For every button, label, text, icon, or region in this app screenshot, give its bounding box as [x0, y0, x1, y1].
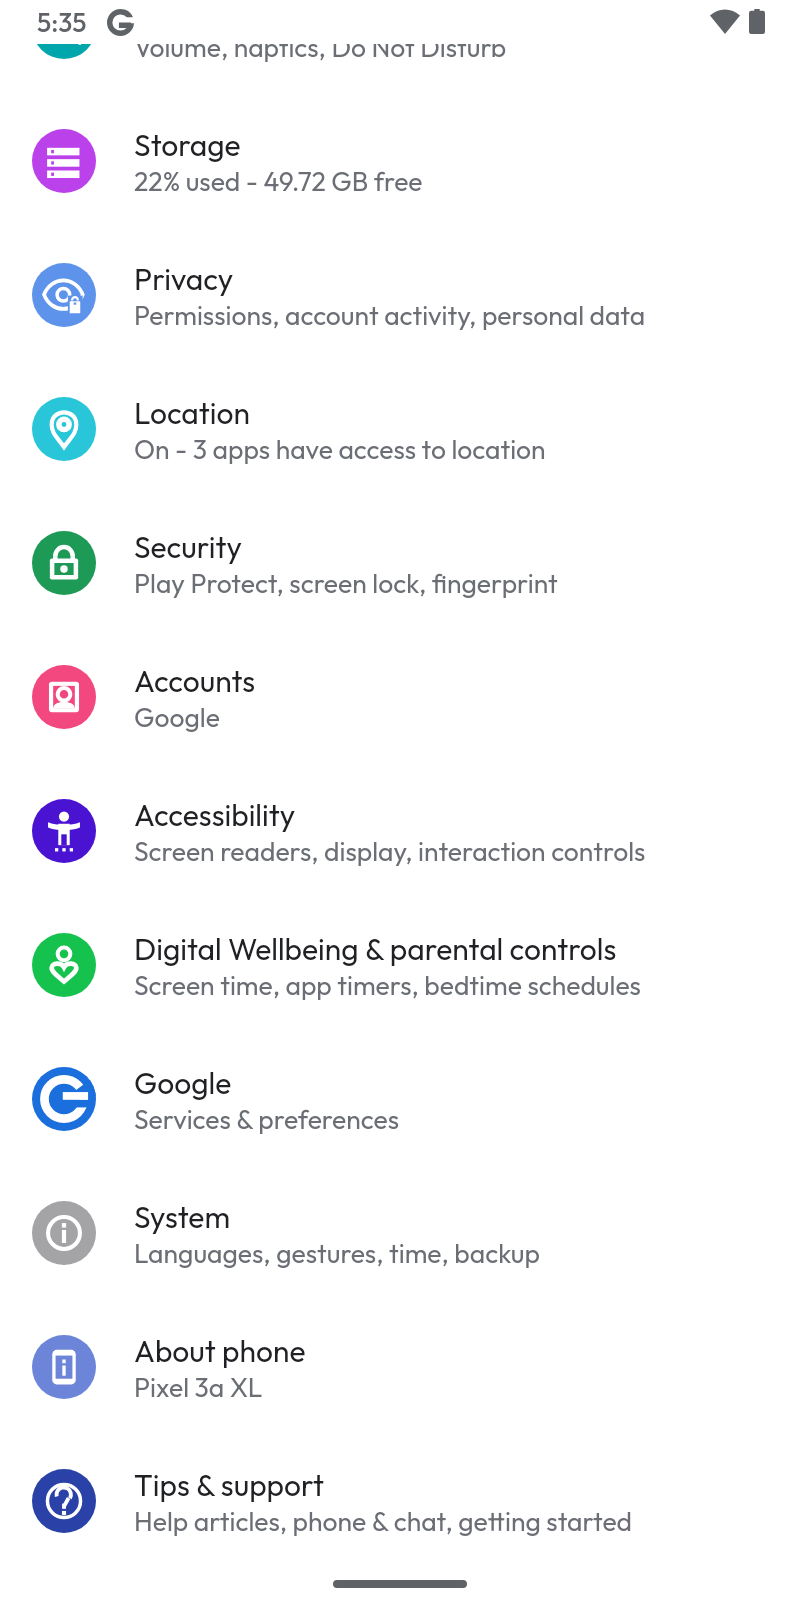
staticText: 5:35 — [37, 6, 87, 39]
button[interactable]: Sound — [0, 0, 800, 129]
staticText: 22% used - 49.72 GB free — [134, 164, 423, 197]
button[interactable]: Accessibility — [0, 799, 800, 933]
button[interactable]: Storage — [0, 129, 800, 263]
staticText: About phone — [134, 1332, 306, 1370]
staticText: Location — [134, 394, 250, 432]
button[interactable]: Tips & support — [0, 1469, 800, 1600]
button[interactable]: System — [0, 1201, 800, 1335]
staticText: Services & preferences — [134, 1102, 400, 1135]
button[interactable]: Location — [0, 397, 800, 531]
staticText: System — [134, 1198, 231, 1236]
staticText: Google — [134, 1064, 232, 1102]
staticText: Help articles, phone & chat, getting sta… — [134, 1504, 633, 1537]
staticText: Security — [134, 528, 242, 566]
staticText: Digital Wellbeing & parental controls — [134, 930, 617, 968]
staticText: Play Protect, screen lock, fingerprint — [134, 566, 558, 599]
staticText: Google — [134, 700, 220, 733]
staticText: Storage — [134, 126, 241, 164]
staticText: Volume, haptics, Do Not Disturb — [134, 30, 507, 63]
staticText: Screen readers, display, interaction con… — [134, 834, 646, 867]
staticText: Accessibility — [134, 796, 296, 834]
staticText: Accounts — [134, 662, 256, 700]
staticText: Permissions, account activity, personal … — [134, 298, 646, 331]
button[interactable]: Google — [0, 1067, 800, 1201]
button[interactable]: Accounts — [0, 665, 800, 799]
button[interactable]: Digital Wellbeing & parental controls — [0, 933, 800, 1067]
staticText: Tips & support — [134, 1466, 325, 1504]
staticText: Screen time, app timers, bedtime schedul… — [134, 968, 641, 1001]
staticText: Pixel 3a XL — [134, 1370, 263, 1403]
button[interactable]: About phone — [0, 1335, 800, 1469]
staticText: On - 3 apps have access to location — [134, 432, 546, 465]
button[interactable]: Privacy — [0, 263, 800, 397]
staticText: Languages, gestures, time, backup — [134, 1236, 540, 1269]
staticText: Privacy — [134, 260, 234, 298]
button[interactable]: Security — [0, 531, 800, 665]
